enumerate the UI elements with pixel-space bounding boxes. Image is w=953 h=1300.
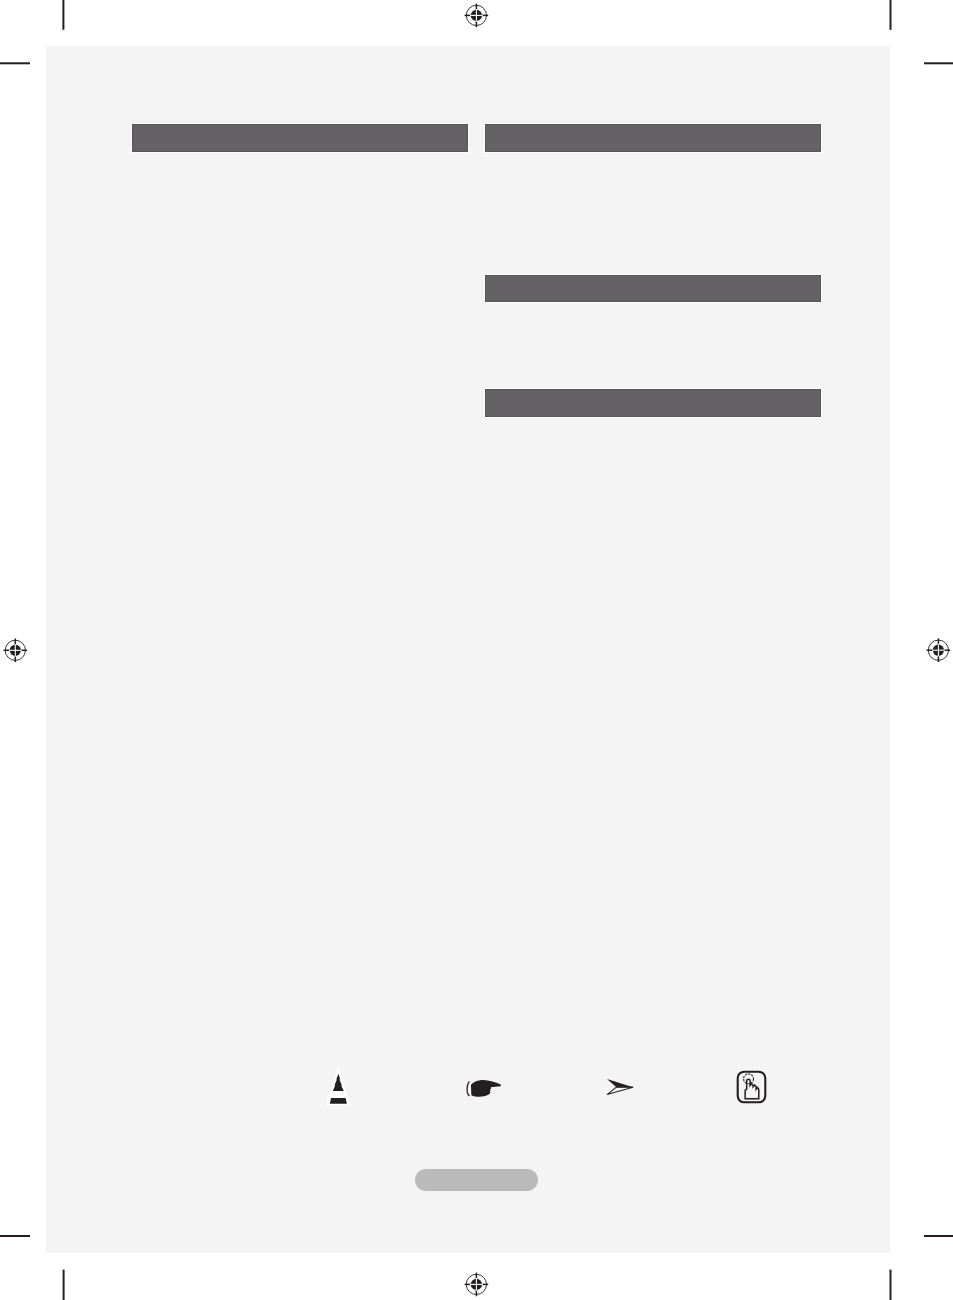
button[interactable] xyxy=(415,1169,538,1191)
button[interactable] xyxy=(484,123,822,153)
button[interactable]: Touch xyxy=(736,1070,767,1104)
button[interactable]: Send xyxy=(603,1074,637,1100)
button[interactable] xyxy=(484,274,822,303)
button[interactable] xyxy=(484,388,822,418)
button[interactable] xyxy=(131,123,469,153)
button[interactable]: Tree xyxy=(322,1062,355,1108)
button[interactable]: Pointing hand xyxy=(464,1074,506,1102)
